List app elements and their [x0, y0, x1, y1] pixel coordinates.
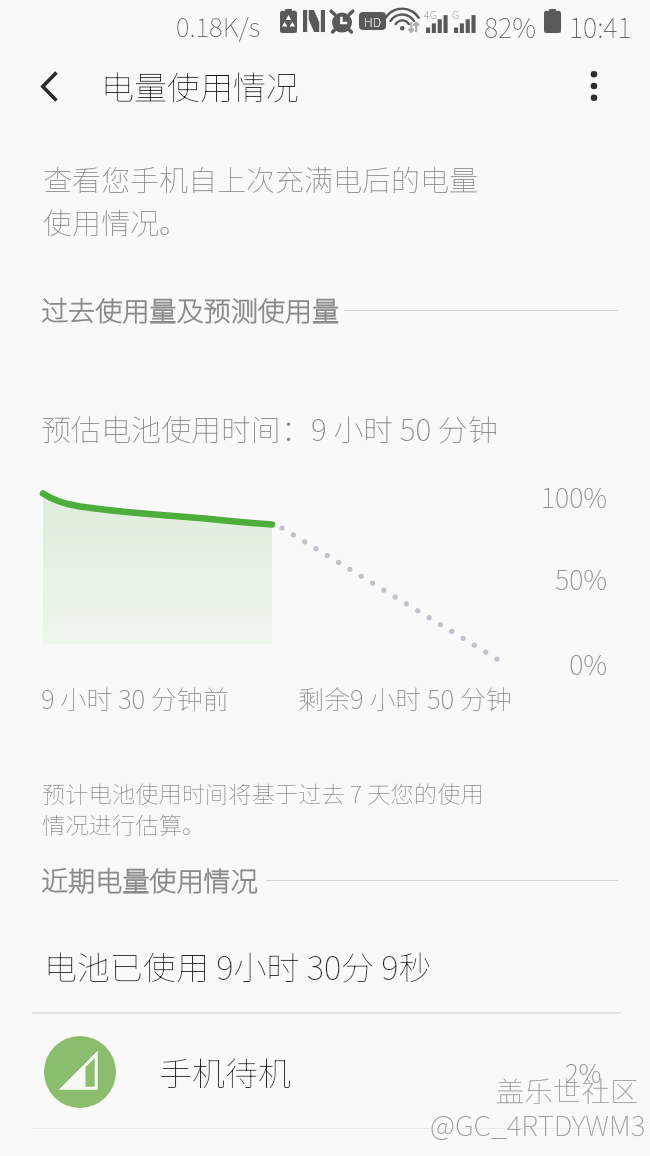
staticText: 手机待机 — [159, 1048, 291, 1096]
staticText: 电量使用情况 — [101, 62, 299, 110]
staticText: 0% — [457, 644, 607, 683]
button[interactable]: More options — [560, 52, 628, 120]
staticText: 4G — [424, 6, 438, 22]
staticText: @GC_4RTDYWM3 — [430, 1103, 646, 1144]
staticText: 过去使用量及预测使用量 — [41, 290, 340, 329]
staticText: 电池已使用 9小时 30分 9秒 — [44, 942, 432, 990]
button[interactable]: 手机待机 — [0, 1012, 650, 1128]
staticText: 100% — [457, 477, 607, 516]
staticText: 近期电量使用情况 — [41, 860, 258, 899]
staticText: 2% — [565, 1053, 602, 1091]
staticText: 50% — [457, 559, 607, 598]
staticText: 剩余9 小时 50 分钟 — [298, 679, 512, 717]
staticText: 盖乐世社区 — [496, 1069, 639, 1110]
staticText: HD — [364, 12, 381, 30]
button[interactable]: Back — [15, 52, 83, 120]
staticText: 查看您手机自上次充满电后的电量 使用情况。 — [43, 157, 479, 243]
staticText: 10:41 — [569, 7, 632, 46]
staticText: 82% — [484, 7, 536, 46]
staticText: G — [452, 6, 460, 22]
staticText: 0.18K/s — [176, 7, 261, 45]
staticText: 预计电池使用时间将基于过去 7 天您的使用 情况进行估算。 — [42, 776, 484, 841]
staticText: 预估电池使用时间：9 小时 50 分钟 — [41, 406, 498, 449]
staticText: 9 小时 30 分钟前 — [41, 679, 229, 717]
